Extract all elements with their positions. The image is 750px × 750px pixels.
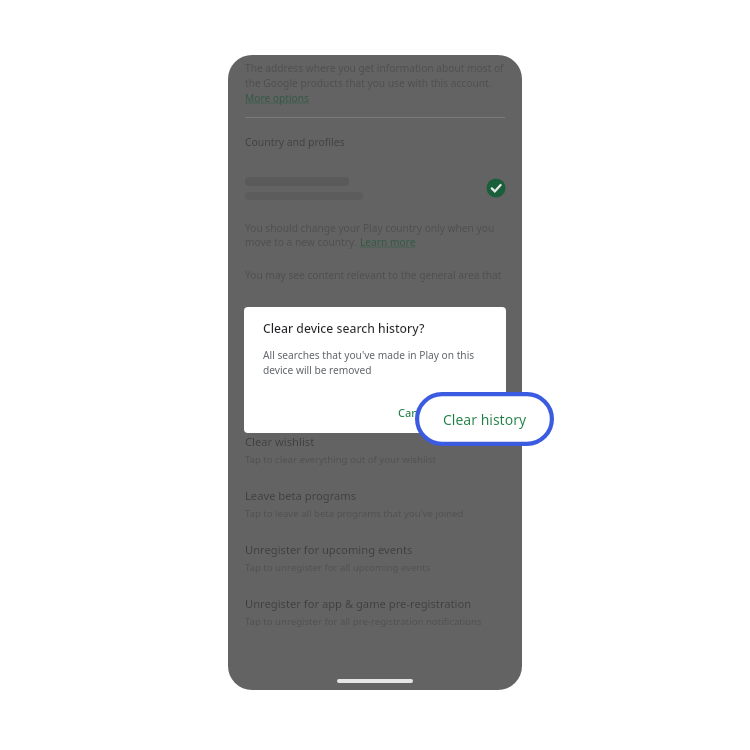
staticText: Clear history [443, 410, 527, 429]
button[interactable]: Unregister for upcoming events [228, 542, 522, 574]
staticText: The address where you get information ab… [245, 61, 504, 90]
staticText: Tap to leave all beta programs that you'… [245, 507, 464, 520]
staticText: Tap to unregister for all pre-registrati… [245, 615, 482, 628]
button[interactable]: Leave beta programs [228, 488, 522, 520]
staticText: move to a new country. [245, 235, 360, 249]
staticText: Cancel [398, 405, 433, 420]
staticText: Clear device search history? [263, 320, 425, 337]
staticText: Tap to unregister for all upcoming event… [245, 561, 431, 574]
staticText: Tap to clear everything out of your wish… [245, 453, 436, 466]
staticText: All searches that you've made in Play on… [263, 348, 475, 377]
other: Selected [486, 178, 506, 198]
button[interactable]: Cancel [389, 399, 442, 426]
staticText: You may see content relevant to the gene… [245, 268, 502, 282]
staticText: Leave beta programs [245, 488, 357, 503]
staticText: More options [245, 91, 309, 105]
staticText: Clear wishlist [245, 434, 315, 449]
button[interactable]: Selected [228, 171, 522, 205]
staticText: Learn more [360, 235, 416, 249]
button[interactable]: Clear history [417, 394, 552, 444]
button[interactable]: More options [245, 91, 309, 105]
button[interactable]: Learn more [360, 235, 416, 249]
button[interactable]: Clear wishlist [228, 434, 522, 466]
staticText: You should change your Play country only… [245, 221, 495, 235]
staticText: Unregister for upcoming events [245, 542, 413, 557]
staticText: Country and profiles [245, 135, 345, 149]
staticText: Unregister for app & game pre-registrati… [245, 596, 472, 611]
button[interactable]: Unregister for app & game pre-registrati… [228, 596, 522, 628]
